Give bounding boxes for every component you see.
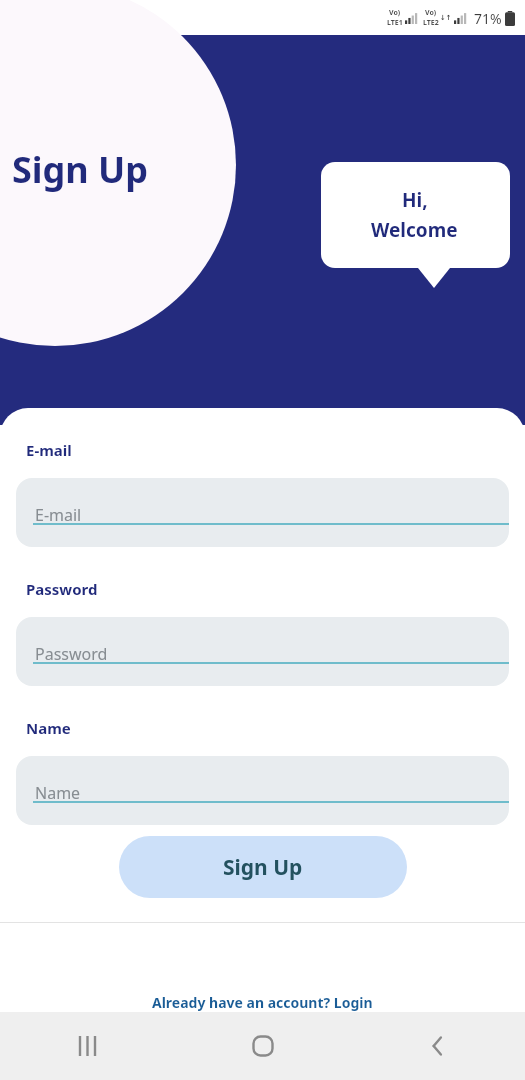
- staticText: 71%: [474, 9, 502, 28]
- button[interactable]: Home: [175, 1012, 350, 1080]
- staticText: Welcome: [371, 217, 458, 243]
- staticText: Vo): [389, 8, 401, 18]
- staticText: E-mail: [26, 440, 72, 460]
- button[interactable]: Sign Up: [119, 836, 407, 898]
- staticText: Name: [35, 782, 81, 804]
- button[interactable]: Back: [350, 1012, 525, 1080]
- staticText: Password: [35, 643, 108, 665]
- staticText: Name: [26, 718, 71, 738]
- button[interactable]: Name: [16, 756, 509, 825]
- staticText: E-mail: [35, 504, 82, 526]
- button[interactable]: E-mail: [16, 478, 509, 547]
- button[interactable]: Already have an account? Login: [0, 923, 525, 1012]
- staticText: Sign Up: [12, 145, 149, 194]
- button[interactable]: Password: [16, 617, 509, 686]
- staticText: Sign Up: [223, 853, 303, 882]
- staticText: Already have an account? Login: [152, 993, 373, 1012]
- staticText: LTE2: [423, 18, 439, 28]
- staticText: ↓↑: [440, 14, 452, 22]
- button[interactable]: Recent apps: [0, 1012, 175, 1080]
- staticText: Vo): [425, 8, 437, 18]
- staticText: Hi,: [402, 187, 428, 213]
- staticText: LTE1: [387, 18, 403, 28]
- staticText: Password: [26, 579, 98, 599]
